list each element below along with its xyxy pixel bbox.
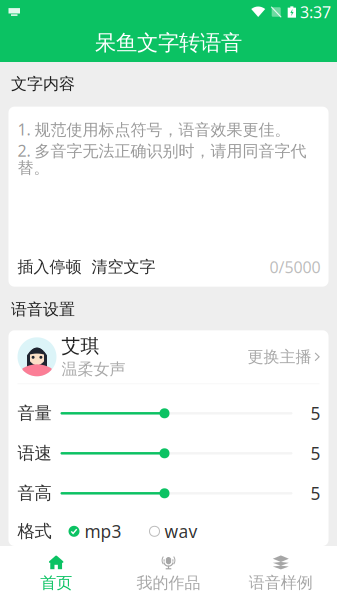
staticText: 更换主播 [247, 347, 311, 367]
staticText: 呆鱼文字转语音 [95, 30, 242, 56]
staticText: 文字内容 [11, 74, 75, 94]
staticText: 格式 [17, 521, 51, 542]
button[interactable]: 首页 [0, 546, 112, 600]
staticText: 5 [310, 482, 320, 505]
staticText: 1. 规范使用标点符号，语音效果更佳。 [17, 119, 290, 140]
button[interactable]: 我的作品 [112, 546, 225, 600]
staticText: 5 [310, 442, 320, 465]
staticText: wav [164, 520, 197, 543]
staticText: 我的作品 [136, 573, 200, 593]
staticText: 音量 [17, 403, 51, 424]
staticText: 语速 [17, 443, 51, 464]
staticText: 温柔女声 [61, 359, 125, 379]
button[interactable]: 清空文字 [91, 257, 155, 277]
staticText: 语音样例 [249, 573, 313, 593]
staticText: 5 [310, 402, 320, 425]
staticText: 插入停顿 [17, 257, 81, 277]
button[interactable]: 艾琪 [8, 330, 328, 383]
button[interactable]: 语音样例 [225, 546, 337, 600]
staticText: 首页 [40, 573, 72, 593]
staticText: 3:37 [300, 1, 331, 23]
staticText: 语音设置 [11, 300, 75, 319]
staticText: 清空文字 [91, 257, 155, 277]
button[interactable]: wav [149, 520, 197, 543]
staticText: 0/5000 [269, 256, 320, 278]
staticText: mp3 [84, 520, 121, 543]
staticText: 音高 [17, 483, 51, 504]
button[interactable]: 插入停顿 [17, 257, 81, 277]
staticText: 2. 多音字无法正确识别时，请用同音字代替。 [17, 140, 306, 178]
button[interactable]: mp3 [68, 520, 121, 543]
staticText: 艾琪 [61, 334, 99, 357]
